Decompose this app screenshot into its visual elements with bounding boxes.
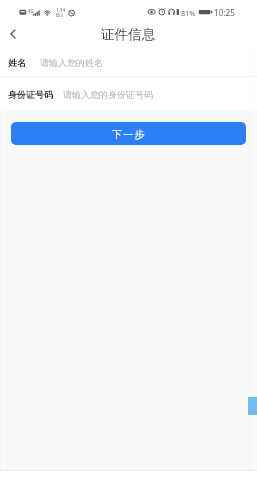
staticText: 请输入您的身份证号码 [63, 89, 153, 100]
staticText: 身份证号码 [8, 89, 53, 100]
staticText: 4G [28, 8, 34, 14]
button[interactable]: 下一步 [11, 122, 246, 145]
staticText: 81% [181, 8, 196, 18]
button[interactable]: 身份证号码 [8, 77, 257, 109]
button[interactable]: Back [0, 21, 26, 47]
staticText: 证件信息 [101, 26, 156, 43]
staticText: 姓名 [8, 57, 26, 68]
staticText: 请输入您的姓名 [40, 57, 103, 68]
staticText: 10:25 [214, 7, 235, 18]
staticText: 1.34 B/s [56, 7, 66, 18]
button[interactable]: 姓名 [8, 45, 257, 76]
staticText: 下一步 [112, 128, 146, 141]
